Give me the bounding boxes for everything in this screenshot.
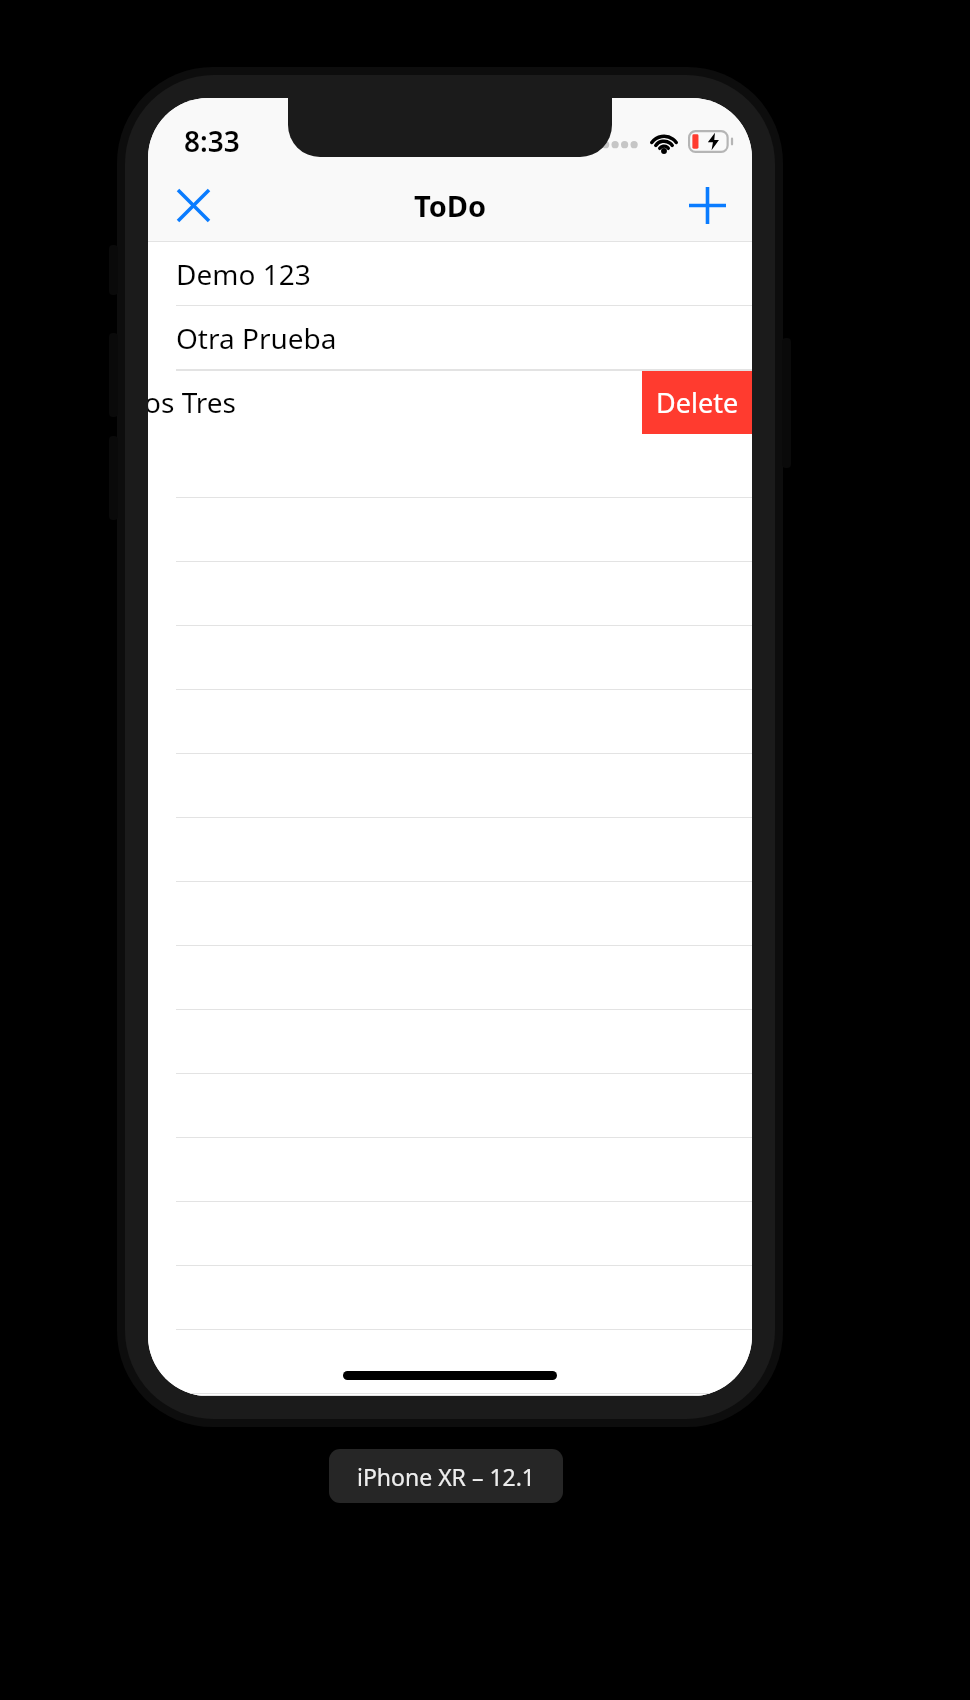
staticText: Otra Prueba bbox=[176, 319, 337, 357]
button[interactable]: Delete bbox=[642, 370, 752, 434]
button[interactable]: Close bbox=[158, 170, 228, 240]
staticText: os Tres bbox=[148, 383, 237, 421]
button[interactable]: os Tres bbox=[148, 370, 642, 434]
button[interactable]: Demo 123 bbox=[148, 242, 752, 306]
button[interactable]: Otra Prueba bbox=[148, 306, 752, 370]
staticText: ToDo bbox=[414, 186, 487, 225]
staticText: Delete bbox=[656, 384, 739, 421]
staticText: Demo 123 bbox=[176, 255, 311, 293]
staticText: iPhone XR – 12.1 bbox=[357, 1461, 536, 1492]
staticText: 8:33 bbox=[184, 122, 240, 160]
button[interactable]: Add bbox=[672, 170, 742, 240]
